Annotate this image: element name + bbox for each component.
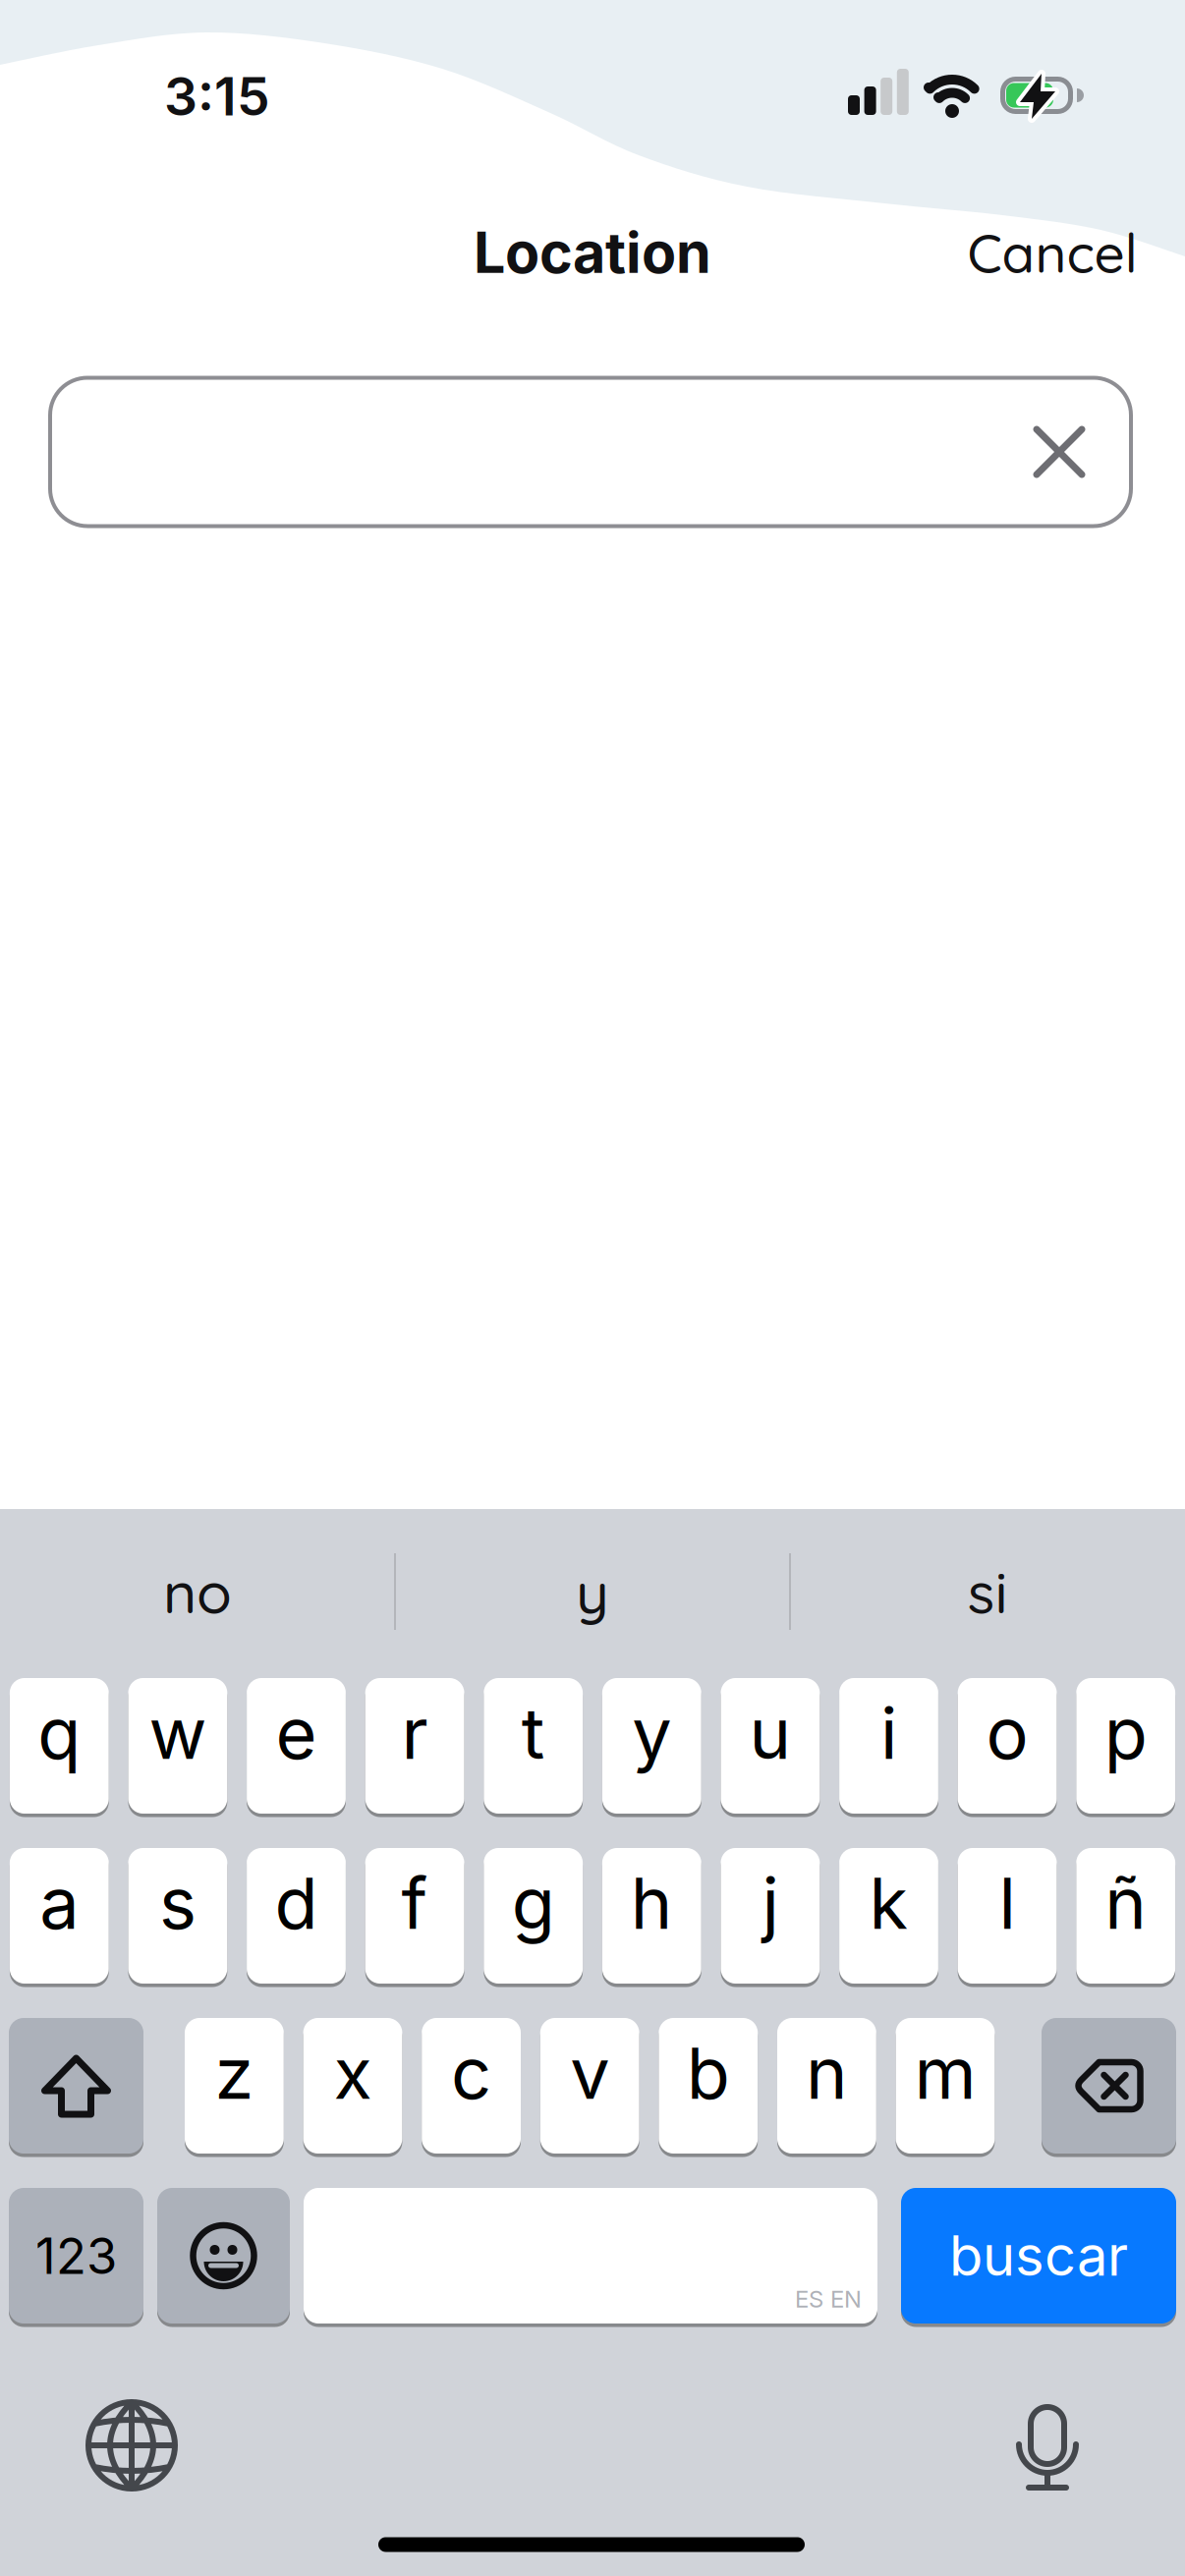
staticText: 123 — [35, 2226, 117, 2286]
button[interactable]: q — [10, 1676, 109, 1816]
button[interactable]: Delete — [1042, 2016, 1176, 2156]
button[interactable]: h — [602, 1846, 701, 1986]
button[interactable]: e — [247, 1676, 346, 1816]
button[interactable]: y — [411, 1548, 774, 1635]
staticText: u — [749, 1690, 791, 1776]
button[interactable]: b — [659, 2016, 758, 2156]
button[interactable]: m — [896, 2016, 995, 2156]
staticText: h — [631, 1860, 673, 1946]
button[interactable]: t — [484, 1676, 583, 1816]
button[interactable]: r — [365, 1676, 464, 1816]
button[interactable]: Clear text — [1027, 420, 1092, 484]
staticText: n — [806, 2030, 848, 2116]
staticText: w — [149, 1690, 207, 1776]
staticText: m — [914, 2030, 976, 2116]
button[interactable]: v — [540, 2016, 639, 2156]
staticText: no — [163, 1556, 232, 1628]
staticText: y — [576, 1556, 609, 1628]
button[interactable]: Search location — [48, 376, 1133, 528]
staticText: e — [276, 1690, 317, 1776]
button[interactable]: l — [958, 1846, 1057, 1986]
button[interactable]: n — [777, 2016, 876, 2156]
staticText: i — [880, 1690, 897, 1776]
button[interactable]: y — [602, 1676, 701, 1816]
button[interactable]: Dictation — [1002, 2399, 1093, 2497]
button[interactable]: 123 — [9, 2186, 143, 2325]
staticText: f — [401, 1860, 428, 1946]
staticText: y — [632, 1690, 671, 1776]
button[interactable]: Space — [304, 2186, 877, 2325]
staticText: k — [869, 1860, 908, 1946]
staticText: s — [159, 1860, 196, 1946]
staticText: p — [1104, 1690, 1147, 1776]
staticText: x — [334, 2030, 372, 2116]
staticText: ñ — [1105, 1860, 1147, 1946]
button[interactable]: buscar — [901, 2186, 1176, 2325]
staticText: q — [38, 1690, 81, 1776]
button[interactable]: g — [484, 1846, 583, 1986]
button[interactable]: z — [185, 2016, 284, 2156]
staticText: buscar — [949, 2222, 1128, 2289]
button[interactable]: Shift — [9, 2016, 143, 2156]
staticText: r — [401, 1690, 428, 1776]
button[interactable]: w — [128, 1676, 227, 1816]
button[interactable]: u — [721, 1676, 820, 1816]
staticText: v — [570, 2030, 609, 2116]
staticText: 3:15 — [164, 65, 270, 128]
button[interactable]: f — [365, 1846, 464, 1986]
button[interactable]: o — [958, 1676, 1057, 1816]
staticText: b — [687, 2030, 730, 2116]
button[interactable]: i — [839, 1676, 938, 1816]
button[interactable]: j — [721, 1846, 820, 1986]
staticText: t — [521, 1690, 545, 1776]
button[interactable]: si — [806, 1548, 1169, 1635]
staticText: a — [40, 1860, 79, 1946]
button[interactable]: s — [128, 1846, 227, 1986]
staticText: g — [512, 1860, 555, 1946]
staticText: l — [999, 1860, 1016, 1946]
staticText: ES EN — [795, 2285, 862, 2313]
staticText: c — [451, 2030, 491, 2116]
button[interactable]: Next keyboard — [85, 2399, 178, 2492]
button[interactable]: Cancel — [967, 219, 1137, 286]
staticText: Location — [474, 218, 711, 287]
button[interactable]: ñ — [1076, 1846, 1175, 1986]
button[interactable]: k — [839, 1846, 938, 1986]
button[interactable]: x — [303, 2016, 402, 2156]
staticText: si — [967, 1556, 1008, 1628]
button[interactable]: d — [247, 1846, 346, 1986]
button[interactable]: Emoji — [157, 2186, 290, 2325]
button[interactable]: no — [16, 1548, 379, 1635]
staticText: o — [986, 1690, 1028, 1776]
staticText: Cancel — [967, 219, 1137, 286]
button[interactable]: a — [10, 1846, 109, 1986]
staticText: z — [215, 2030, 254, 2116]
staticText: d — [275, 1860, 318, 1946]
button[interactable]: p — [1076, 1676, 1175, 1816]
staticText: j — [762, 1860, 779, 1946]
button[interactable]: c — [422, 2016, 521, 2156]
